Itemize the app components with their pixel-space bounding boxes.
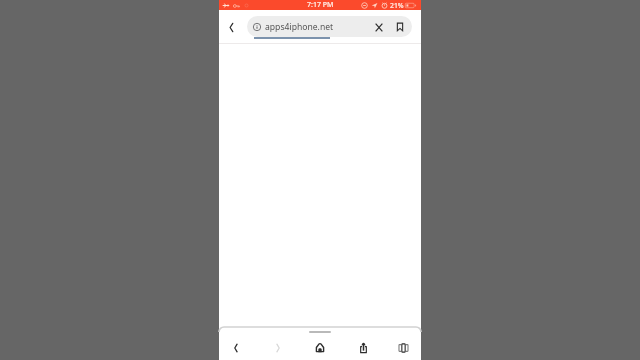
staticText: 21% <box>390 1 404 10</box>
button[interactable]: Bookmark <box>393 20 407 34</box>
button[interactable]: Tabs <box>385 336 421 360</box>
staticText: apps4iphone.net <box>265 21 334 33</box>
button[interactable]: Home <box>302 336 338 360</box>
button[interactable]: Forward <box>260 336 296 360</box>
button[interactable]: Stop loading <box>372 20 386 34</box>
button[interactable]: Back <box>221 17 241 37</box>
button[interactable]: Back <box>218 336 254 360</box>
button[interactable]: apps4iphone.net <box>247 16 412 37</box>
button[interactable]: Share <box>345 336 381 360</box>
staticText: 7:17 PM <box>307 0 334 10</box>
